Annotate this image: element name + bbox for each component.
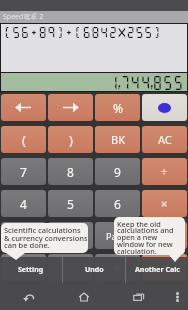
button[interactable]: Equals [95, 254, 140, 281]
staticText: % [113, 100, 123, 116]
staticText: Speed電卓 2 [3, 12, 44, 22]
button[interactable]: Nine [95, 158, 140, 185]
button[interactable]: Seven [1, 158, 46, 185]
button[interactable]: Setting [0, 257, 62, 283]
button[interactable]: Zero [1, 254, 46, 281]
button[interactable]: Plus [142, 254, 187, 281]
staticText: × [161, 196, 168, 211]
button[interactable]: New calculation window [142, 94, 187, 121]
staticText: 1 [20, 228, 27, 244]
staticText: 2 [67, 228, 74, 244]
staticText: 0 [20, 260, 27, 276]
button[interactable]: Divide [142, 158, 187, 185]
button[interactable]: Five [48, 190, 93, 217]
staticText: ) [69, 131, 73, 149]
button[interactable]: Recent apps [111, 283, 166, 310]
button[interactable]: Paste [95, 222, 140, 249]
staticText: 5 [67, 196, 74, 212]
button[interactable]: Four [1, 190, 46, 217]
button[interactable]: Move cursor right [48, 94, 93, 121]
button[interactable]: Backspace [95, 126, 140, 153]
staticText: Keep the old calculations and open a new… [117, 219, 174, 255]
staticText: ( [22, 131, 26, 149]
staticText: 8 [67, 164, 74, 180]
button[interactable]: Six [95, 190, 140, 217]
button[interactable]: Undo [63, 257, 125, 283]
button[interactable]: Move cursor left [1, 94, 46, 121]
button[interactable]: One [1, 222, 46, 249]
staticText: (56+89)+(6842x255) [3, 25, 162, 39]
button[interactable]: Back [0, 283, 56, 310]
staticText: Paste [106, 230, 130, 242]
staticText: 7 [20, 164, 27, 180]
button[interactable]: Eight [48, 158, 93, 185]
button[interactable]: Percent [95, 94, 140, 121]
staticText: − [161, 228, 168, 243]
button[interactable]: Open parenthesis [1, 126, 46, 153]
staticText: 6 [114, 196, 121, 212]
button[interactable]: Two [48, 222, 93, 249]
staticText: BK [111, 132, 125, 147]
button[interactable]: Multiply [142, 190, 187, 217]
staticText: + [161, 260, 168, 276]
button[interactable]: More options [166, 283, 188, 310]
staticText: Undo [85, 265, 104, 275]
button[interactable]: All clear [142, 126, 187, 153]
button[interactable]: Close parenthesis [48, 126, 93, 153]
staticText: Setting [18, 265, 44, 275]
staticText: ÷ [161, 164, 168, 179]
staticText: Scientific calculations & currency conve… [4, 225, 87, 250]
staticText: 9 [114, 164, 121, 180]
staticText: AC [158, 132, 172, 147]
button[interactable]: Home [56, 283, 111, 310]
staticText: 4 [20, 196, 27, 212]
button[interactable]: Minus [142, 222, 187, 249]
button[interactable]: Another Calc [126, 257, 188, 283]
staticText: Another Calc [135, 265, 180, 275]
staticText: 1,744,855 [108, 74, 184, 91]
button[interactable]: Decimal point [48, 254, 93, 281]
